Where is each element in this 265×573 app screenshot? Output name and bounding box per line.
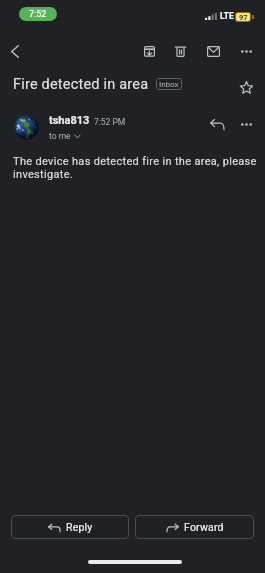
staticText: Inbox bbox=[159, 80, 179, 89]
staticText: Fire detected in area bbox=[13, 76, 149, 93]
staticText: 97 bbox=[239, 13, 248, 21]
staticText: The device has detected fire in the area… bbox=[13, 155, 261, 181]
staticText: Reply bbox=[66, 521, 93, 533]
staticText: tsha813 bbox=[49, 114, 90, 127]
staticText: to me bbox=[49, 131, 71, 141]
button[interactable]: Mark as unread bbox=[199, 37, 227, 65]
button[interactable]: Reply bbox=[203, 110, 231, 138]
staticText: 7:52 PM bbox=[94, 117, 126, 127]
staticText: Forward bbox=[184, 521, 224, 533]
button[interactable]: Reply bbox=[11, 515, 129, 539]
button[interactable]: Back bbox=[1, 37, 29, 65]
button[interactable]: Archive bbox=[135, 37, 163, 65]
button[interactable]: More options for message bbox=[232, 110, 260, 138]
button[interactable]: Delete bbox=[166, 37, 194, 65]
button[interactable]: More options bbox=[232, 37, 260, 65]
button[interactable]: Star bbox=[232, 73, 260, 101]
staticText: 7:52 bbox=[29, 9, 47, 20]
staticText: LTE bbox=[220, 11, 234, 21]
button[interactable]: Forward bbox=[135, 515, 254, 539]
